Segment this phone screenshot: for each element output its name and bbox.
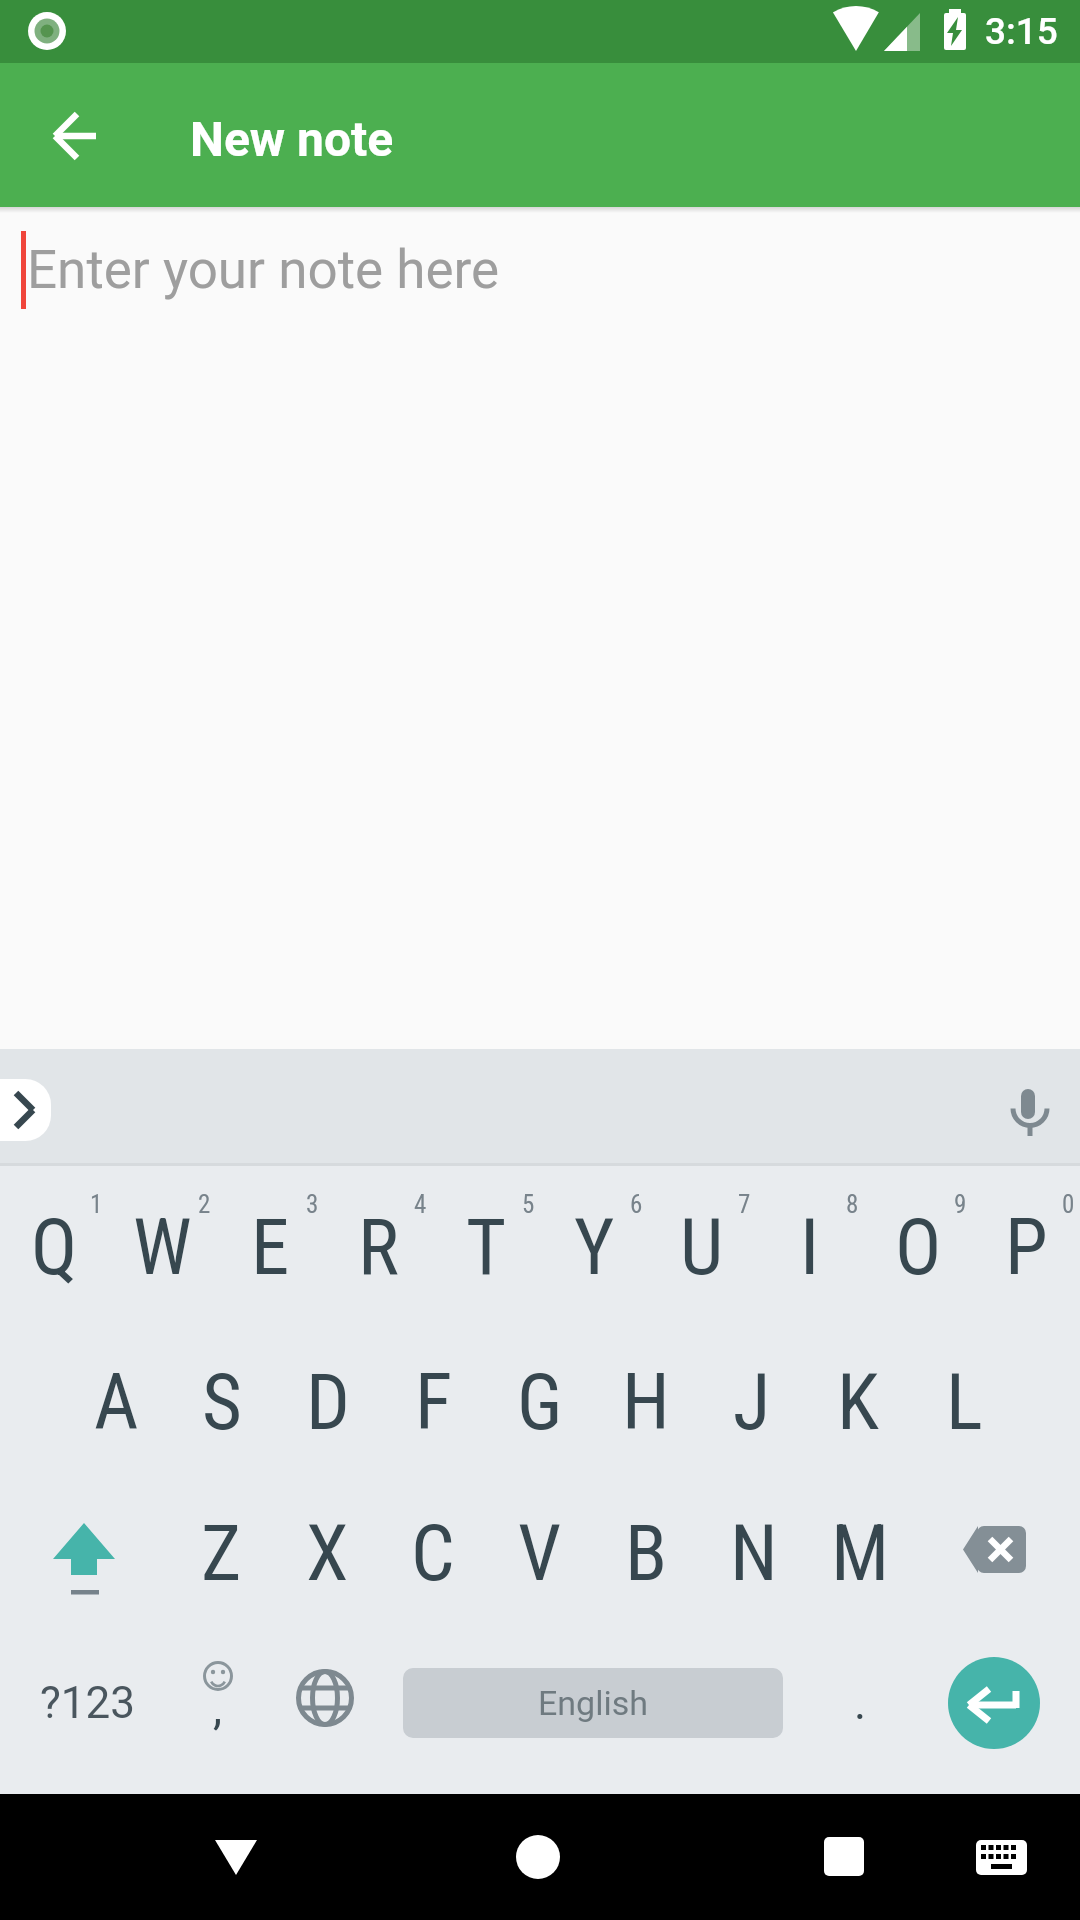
staticText: D: [306, 1358, 350, 1448]
button[interactable]: W: [108, 1166, 216, 1325]
staticText: English: [538, 1683, 649, 1723]
staticText: 3:15: [985, 10, 1058, 53]
button[interactable]: E: [216, 1166, 324, 1325]
staticText: U: [680, 1203, 724, 1293]
button[interactable]: N: [700, 1477, 807, 1627]
button[interactable]: Enter your note here: [0, 207, 1080, 1049]
button[interactable]: Y: [540, 1166, 648, 1325]
staticText: R: [358, 1203, 399, 1293]
staticText: G: [517, 1358, 563, 1448]
staticText: ?123: [40, 1677, 135, 1729]
staticText: W: [133, 1203, 192, 1293]
button[interactable]: English: [403, 1668, 783, 1738]
staticText: 7: [738, 1190, 751, 1219]
button[interactable]: D: [275, 1325, 381, 1477]
button[interactable]: [0, 1477, 168, 1627]
staticText: 5: [522, 1190, 535, 1219]
button[interactable]: H: [593, 1325, 699, 1477]
button[interactable]: [0, 1079, 51, 1141]
button[interactable]: S: [169, 1325, 275, 1477]
button[interactable]: Z: [168, 1477, 274, 1627]
staticText: V: [518, 1509, 562, 1599]
staticText: Y: [574, 1203, 615, 1293]
staticText: 2: [198, 1190, 211, 1219]
button[interactable]: [262, 1627, 386, 1779]
staticText: B: [625, 1509, 668, 1599]
button[interactable]: [914, 1477, 1080, 1627]
staticText: E: [251, 1203, 290, 1293]
staticText: N: [730, 1509, 778, 1599]
staticText: Enter your note here: [27, 239, 500, 301]
staticText: S: [202, 1358, 242, 1448]
button[interactable]: J: [699, 1325, 805, 1477]
staticText: H: [622, 1358, 670, 1448]
button[interactable]: M: [807, 1477, 914, 1627]
button[interactable]: B: [593, 1477, 700, 1627]
staticText: J: [733, 1358, 771, 1448]
staticText: X: [306, 1509, 349, 1599]
staticText: 9: [954, 1190, 967, 1219]
button[interactable]: [200, 1821, 272, 1893]
button[interactable]: A: [63, 1325, 169, 1477]
staticText: M: [831, 1509, 890, 1599]
button[interactable]: I: [756, 1166, 864, 1325]
staticText: Z: [201, 1509, 242, 1599]
button[interactable]: ,: [174, 1627, 262, 1779]
staticText: A: [94, 1358, 139, 1448]
staticText: K: [837, 1358, 879, 1448]
button[interactable]: [808, 1821, 880, 1893]
staticText: T: [466, 1203, 507, 1293]
staticText: 6: [630, 1190, 643, 1219]
staticText: 3: [306, 1190, 319, 1219]
button[interactable]: L: [911, 1325, 1017, 1477]
button[interactable]: R: [324, 1166, 432, 1325]
staticText: New note: [190, 111, 394, 167]
staticText: 4: [414, 1190, 427, 1219]
staticText: I: [800, 1203, 820, 1293]
staticText: L: [946, 1358, 983, 1448]
staticText: P: [1005, 1203, 1048, 1293]
button[interactable]: Q: [0, 1166, 108, 1325]
button[interactable]: U: [648, 1166, 756, 1325]
button[interactable]: O: [864, 1166, 972, 1325]
button[interactable]: G: [487, 1325, 593, 1477]
button[interactable]: F: [381, 1325, 487, 1477]
button[interactable]: [965, 1821, 1037, 1893]
button[interactable]: K: [805, 1325, 911, 1477]
button[interactable]: [994, 1072, 1066, 1144]
button[interactable]: .: [800, 1627, 920, 1779]
staticText: O: [895, 1203, 942, 1293]
staticText: .: [854, 1676, 867, 1730]
button[interactable]: ?123: [0, 1627, 174, 1779]
button[interactable]: P: [972, 1166, 1080, 1325]
button[interactable]: [502, 1821, 574, 1893]
staticText: 0: [1062, 1190, 1075, 1219]
button[interactable]: [948, 1657, 1040, 1749]
staticText: ,: [213, 1681, 223, 1735]
button[interactable]: V: [486, 1477, 593, 1627]
staticText: C: [411, 1509, 455, 1599]
button[interactable]: C: [380, 1477, 486, 1627]
staticText: 8: [846, 1190, 859, 1219]
staticText: 1: [90, 1190, 103, 1219]
button[interactable]: T: [432, 1166, 540, 1325]
staticText: F: [415, 1358, 453, 1448]
button[interactable]: X: [274, 1477, 380, 1627]
staticText: Q: [31, 1203, 78, 1293]
button[interactable]: [39, 99, 111, 171]
